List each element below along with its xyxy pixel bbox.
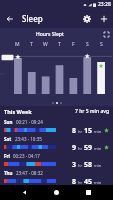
staticText: This Week [4,108,32,115]
staticText: Hours Slept [36,31,64,38]
staticText: 45 [84,177,93,185]
staticText: Thu [4,170,13,176]
button[interactable]: Settings [78,10,95,27]
staticText: T [58,41,61,48]
staticText: T [30,41,33,48]
staticText: hr [77,163,84,168]
staticText: hr [77,180,84,185]
staticText: min [93,163,102,168]
staticText: min [93,146,102,151]
staticText: 58 [84,160,93,168]
staticText: 23:47 - 08:32 [16,170,43,176]
button[interactable]: Fri [0,151,113,168]
staticText: 23:43 - 10:35 [15,136,42,142]
staticText: M [15,41,20,48]
staticText: min [93,180,102,185]
staticText: S [86,41,89,48]
staticText: Sleep [22,13,43,24]
button[interactable]: Recents [81,185,96,200]
staticText: 59 [84,143,93,151]
button[interactable]: Thu [0,168,113,185]
staticText: 00:23 - 04:17 [13,153,40,159]
staticText: 9 [72,143,77,151]
staticText: hr [77,146,84,151]
button[interactable]: Sun [0,117,113,134]
staticText: 8 [72,126,77,134]
button[interactable]: Expand chart [100,28,112,40]
staticText: min [93,129,102,134]
staticText: 23:28 [98,1,111,8]
staticText: S [100,41,103,48]
staticText: Sun [4,119,13,125]
button[interactable]: Add sleep entry [95,10,112,27]
staticText: 8 [72,177,77,185]
button[interactable]: Sat [0,134,113,151]
staticText: hr [77,129,84,134]
staticText: Fri [4,153,10,159]
staticText: 15 [84,126,93,134]
staticText: 7 hr 5 min avg [75,108,109,115]
button[interactable]: Back [0,9,19,28]
staticText: 3 [72,160,77,168]
button[interactable]: Home [49,185,64,200]
staticText: W [43,41,48,48]
button[interactable]: Back [17,185,32,200]
staticText: 00:21 - 09:24 [16,119,43,125]
staticText: F [72,41,75,48]
button[interactable]: This Week [0,106,113,117]
staticText: Sat [4,136,12,142]
